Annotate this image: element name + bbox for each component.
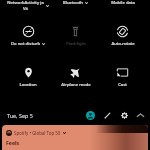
button[interactable]: Cast xyxy=(99,66,146,88)
staticText: Spotify • Global Top 50 xyxy=(14,130,61,136)
button[interactable]: Mobile data xyxy=(99,0,146,11)
staticText: Airplane mode xyxy=(61,82,91,88)
button[interactable]: User account xyxy=(83,108,98,123)
button[interactable]: Spotify • Global Top 50 xyxy=(2,125,148,150)
button[interactable]: Do not disturb xyxy=(4,25,52,47)
staticText: NetworkActivity ja Vä xyxy=(7,0,44,11)
button[interactable]: Auto-rotate xyxy=(99,25,146,47)
staticText: Cast xyxy=(118,82,127,88)
button[interactable]: Settings xyxy=(117,108,132,123)
staticText: Feels xyxy=(6,139,20,146)
button[interactable]: Tue, Sep 5 xyxy=(7,112,33,119)
button[interactable]: Flashlight xyxy=(52,25,99,47)
button[interactable]: Bluetooth xyxy=(52,0,99,11)
button[interactable]: NetworkActivity ja Vä xyxy=(4,0,52,11)
staticText: Bluetooth xyxy=(63,0,83,6)
button[interactable]: Airplane mode xyxy=(52,66,99,88)
staticText: Mobile data xyxy=(111,0,135,6)
staticText: Location xyxy=(19,82,37,88)
staticText: Auto-rotate xyxy=(111,41,135,47)
staticText: Do not disturb xyxy=(11,41,40,47)
button[interactable]: Location xyxy=(4,66,52,88)
button[interactable]: Collapse xyxy=(133,108,148,123)
button[interactable]: Edit tiles xyxy=(100,108,115,123)
staticText: Flashlight xyxy=(66,41,86,47)
